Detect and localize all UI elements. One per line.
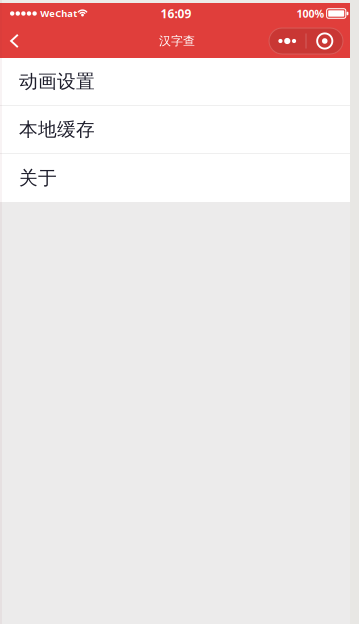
staticText: 16:09 xyxy=(160,5,191,21)
button[interactable]: Back xyxy=(0,24,29,58)
button[interactable]: 本地缓存 xyxy=(0,106,350,154)
staticText: 汉字查 xyxy=(159,34,195,48)
staticText: 动画设置 xyxy=(19,70,95,93)
staticText: 关于 xyxy=(19,166,57,189)
staticText: 100% xyxy=(296,6,324,21)
button[interactable]: 关于 xyxy=(0,154,350,202)
staticText: WeChat xyxy=(40,7,77,20)
button[interactable]: More options and close mini program xyxy=(269,24,343,58)
button[interactable]: 动画设置 xyxy=(0,58,350,106)
staticText: 本地缓存 xyxy=(19,118,95,141)
